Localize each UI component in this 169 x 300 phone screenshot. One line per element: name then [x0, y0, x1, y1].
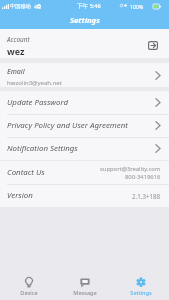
staticText: Update Password: [7, 97, 69, 108]
button[interactable]: Settings: [113, 274, 169, 300]
staticText: 2.1.3+188: [132, 192, 161, 200]
staticText: 中国移动: [10, 3, 31, 10]
staticText: 100%: [130, 3, 144, 10]
button[interactable]: Contact Us: [0, 161, 169, 184]
button[interactable]: Device: [0, 274, 57, 300]
button[interactable]: Notification Settings: [0, 137, 169, 160]
staticText: Settings: [130, 289, 152, 297]
staticText: hwzolin3@yeah.net: [7, 79, 62, 87]
staticText: Message: [73, 289, 97, 297]
staticText: 下午 5:46: [77, 2, 101, 10]
button[interactable]: Email: [0, 63, 169, 87]
staticText: Privacy Policy and User Agreement: [7, 120, 128, 131]
staticText: Contact Us: [7, 167, 45, 178]
staticText: support@3reality.com: [100, 165, 161, 173]
button[interactable]: Version: [0, 184, 169, 207]
button[interactable]: Account: [0, 29, 169, 58]
staticText: Notification Settings: [7, 143, 78, 154]
button[interactable]: Message: [57, 274, 113, 300]
staticText: Settings: [70, 15, 100, 25]
button[interactable]: Log out: [146, 38, 160, 52]
staticText: 800-3419616: [125, 173, 161, 181]
staticText: Version: [7, 190, 33, 201]
staticText: Device: [20, 289, 38, 297]
button[interactable]: Update Password: [0, 91, 169, 114]
staticText: Email: [7, 67, 25, 77]
staticText: Account: [7, 35, 30, 44]
staticText: wez: [7, 45, 25, 57]
button[interactable]: Privacy Policy and User Agreement: [0, 114, 169, 137]
staticText: 4G: [34, 3, 41, 10]
